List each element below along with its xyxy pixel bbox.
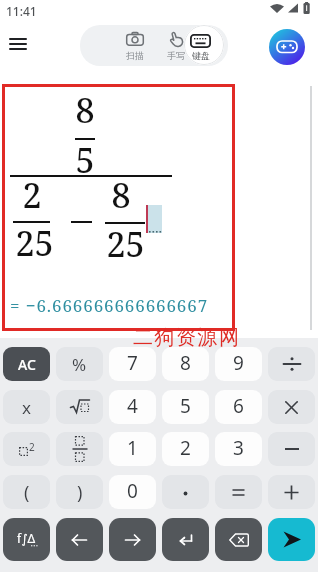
staticText: 11:41	[6, 3, 37, 19]
staticText: 键盘	[192, 50, 210, 61]
button[interactable]	[268, 390, 315, 424]
button[interactable]	[184, 25, 224, 65]
button[interactable]	[162, 518, 209, 561]
staticText: 2	[29, 440, 35, 454]
button[interactable]: 9	[215, 347, 262, 381]
staticText: = −6.666666666666667	[10, 294, 209, 317]
button[interactable]: AC	[3, 347, 50, 381]
staticText: 7	[127, 350, 138, 376]
button[interactable]: %	[56, 347, 103, 381]
button[interactable]	[215, 475, 262, 509]
button[interactable]: (	[3, 475, 50, 509]
staticText: 8	[180, 350, 191, 376]
button[interactable]	[9, 38, 27, 50]
staticText: 0	[127, 478, 138, 504]
staticText: f∫Δ	[17, 530, 36, 546]
staticText: 9	[233, 350, 244, 376]
button[interactable]: 4	[109, 390, 156, 424]
staticText: 扫描	[126, 50, 144, 61]
staticText: 2	[22, 172, 42, 218]
button[interactable]: 3	[215, 432, 262, 466]
button[interactable]: 7	[109, 347, 156, 381]
button[interactable]	[56, 518, 103, 561]
button[interactable]: x	[3, 390, 50, 424]
button[interactable]: 2	[3, 432, 50, 466]
button[interactable]: f∫Δ	[3, 518, 50, 561]
button[interactable]	[153, 28, 199, 64]
button[interactable]: 0	[109, 475, 156, 509]
staticText: (	[24, 480, 30, 505]
staticText: 二狗资源网	[133, 325, 241, 350]
button[interactable]	[268, 347, 315, 381]
staticText: AC	[18, 355, 36, 374]
button[interactable]	[56, 432, 103, 466]
button[interactable]: 8	[162, 347, 209, 381]
staticText: 8	[75, 87, 95, 133]
button[interactable]	[56, 390, 103, 424]
button[interactable]	[112, 28, 158, 64]
staticText: 2	[180, 435, 191, 461]
staticText: 25	[106, 221, 145, 267]
button[interactable]	[269, 29, 305, 65]
staticText: 25	[15, 220, 54, 266]
button[interactable]: )	[56, 475, 103, 509]
staticText: 1	[127, 435, 138, 461]
staticText: )	[77, 480, 83, 505]
button[interactable]: 6	[215, 390, 262, 424]
button[interactable]	[162, 475, 209, 509]
staticText: %	[72, 353, 87, 376]
button[interactable]	[268, 518, 315, 561]
staticText: 5	[180, 393, 191, 419]
staticText: 手写	[167, 50, 185, 61]
button[interactable]: 1	[109, 432, 156, 466]
staticText: 5	[75, 137, 95, 183]
staticText: 6	[233, 393, 244, 419]
staticText: 3	[233, 435, 244, 461]
staticText: 4	[127, 393, 138, 419]
button[interactable]	[268, 432, 315, 466]
staticText: 8	[111, 172, 131, 218]
button[interactable]	[268, 475, 315, 509]
button[interactable]	[215, 518, 262, 561]
button[interactable]: 5	[162, 390, 209, 424]
button[interactable]: 2	[162, 432, 209, 466]
button[interactable]	[109, 518, 156, 561]
staticText: x	[22, 396, 31, 419]
